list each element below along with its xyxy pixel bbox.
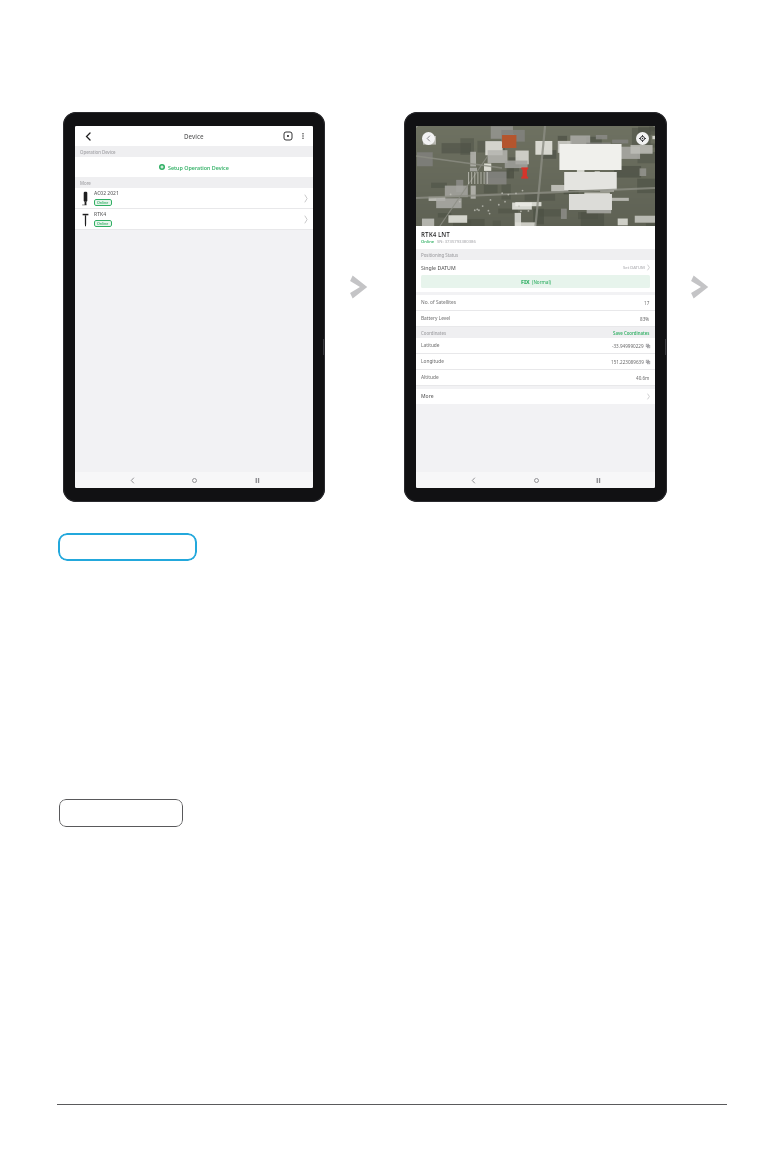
button[interactable]: More options (297, 130, 309, 142)
staticText: More (421, 393, 434, 400)
button[interactable]: Scan (281, 129, 295, 143)
button[interactable]: AC02 2021 (75, 188, 313, 208)
button[interactable]: Home (530, 474, 542, 486)
button[interactable]: More (416, 389, 655, 404)
staticText: Online (421, 239, 435, 245)
button[interactable] (59, 799, 183, 827)
button[interactable]: Back (422, 132, 435, 145)
staticText: No. of Satellites (421, 299, 457, 306)
button[interactable]: Latitude (416, 338, 655, 353)
staticText: 17 (644, 300, 650, 306)
staticText: Positioning Status (421, 252, 459, 258)
staticText: Latitude (421, 342, 440, 349)
staticText: RTK4 LNT (421, 230, 450, 238)
other: Copy (646, 360, 650, 364)
staticText: Online (97, 200, 109, 205)
staticText: -33.949990229 (612, 343, 644, 349)
staticText: (Normal) (532, 279, 551, 285)
button[interactable]: Longitude (416, 354, 655, 369)
button[interactable]: My location (636, 132, 649, 145)
button[interactable]: Home (188, 474, 200, 486)
button[interactable]: Save Coordinates (613, 330, 650, 336)
staticText: AC02 2021 (94, 190, 119, 197)
staticText: Single DATUM (421, 264, 456, 271)
button[interactable]: FIX (421, 275, 650, 288)
staticText: FIX (521, 278, 530, 285)
staticText: Set DATUM (623, 265, 645, 271)
staticText: Operation Device (80, 149, 116, 155)
button[interactable]: Battery Level (416, 311, 655, 326)
staticText: Battery Level (421, 315, 451, 322)
button[interactable]: Recent apps (592, 474, 604, 486)
button[interactable] (58, 533, 197, 561)
button[interactable]: Back (80, 128, 96, 144)
button[interactable]: Back (467, 474, 479, 486)
button[interactable]: RTK4 (75, 209, 313, 229)
button[interactable]: No. of Satellites (416, 295, 655, 310)
staticText: 151.223089639 (611, 359, 644, 365)
staticText: Setup Operation Device (168, 164, 229, 171)
staticText: Longitude (421, 358, 444, 365)
staticText: RTK4 (94, 211, 106, 218)
button[interactable]: Single DATUM (416, 260, 655, 275)
staticText: Altitude (421, 374, 439, 381)
staticText: Online (97, 221, 109, 226)
button[interactable]: Recent apps (251, 474, 263, 486)
staticText: More (80, 180, 91, 186)
staticText: SN: 3735793380386 (437, 239, 476, 245)
staticText: 40.6m (636, 375, 650, 381)
staticText: 83% (640, 316, 650, 322)
other: Copy (646, 344, 650, 348)
button[interactable]: Altitude (416, 370, 655, 385)
staticText: Device (184, 132, 204, 140)
button[interactable]: Setup Operation Device (75, 157, 313, 177)
staticText: Save Coordinates (613, 330, 650, 336)
button[interactable]: Back (126, 474, 138, 486)
staticText: Coordinates (421, 330, 446, 336)
